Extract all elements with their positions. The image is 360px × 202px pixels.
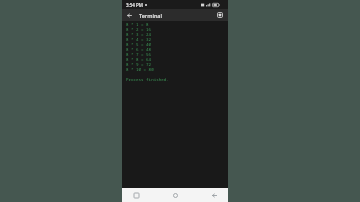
staticText: 8 * 7 = 56	[126, 52, 152, 57]
staticText: 8 * 2 = 16	[126, 27, 152, 32]
staticText: 8 * 1 = 8	[126, 22, 149, 27]
staticText: 8 * 10 = 80	[126, 67, 154, 72]
button[interactable]: Stop	[215, 10, 225, 20]
staticText: 8 * 9 = 72	[126, 62, 152, 67]
staticText: 8 * 3 = 24	[126, 32, 152, 37]
staticText: 8 * 8 = 64	[126, 57, 152, 62]
button[interactable]: Back	[208, 189, 220, 201]
staticText: 8 * 5 = 40	[126, 42, 152, 47]
staticText: Terminal	[139, 12, 162, 19]
staticText: 8 * 4 = 32	[126, 37, 152, 42]
staticText: 8 * 6 = 48	[126, 47, 152, 52]
staticText: 3:54 PM	[126, 2, 143, 8]
button[interactable]: Home	[169, 189, 181, 201]
button[interactable]: Back	[125, 11, 134, 20]
staticText: Process finished.	[126, 77, 169, 82]
button[interactable]: Recents	[130, 189, 142, 201]
